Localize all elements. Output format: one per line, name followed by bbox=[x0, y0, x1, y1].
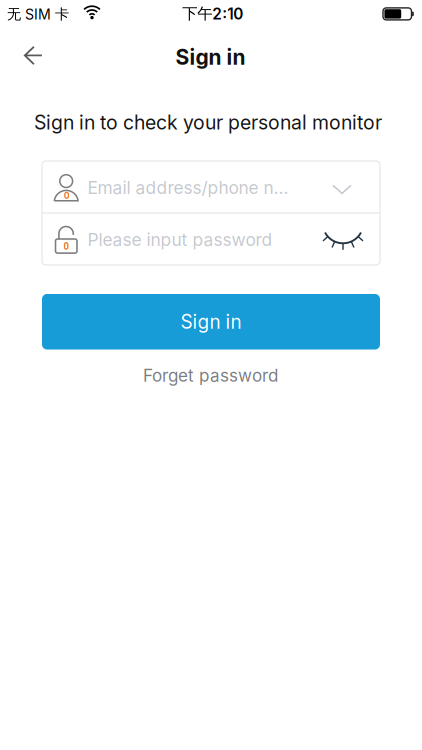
staticText: 下午2:10 bbox=[182, 4, 243, 23]
button[interactable]: Please input password bbox=[42, 213, 380, 265]
staticText: Sign in bbox=[180, 310, 241, 333]
staticText: Sign in bbox=[175, 44, 245, 70]
button[interactable]: Forget password bbox=[143, 365, 278, 386]
button[interactable]: Back bbox=[11, 33, 55, 77]
button[interactable]: Show password bbox=[320, 225, 364, 253]
staticText: Email address/phone n… bbox=[87, 177, 288, 198]
staticText: 无 SIM 卡 bbox=[7, 5, 69, 23]
staticText: Forget password bbox=[143, 365, 278, 386]
staticText: Please input password bbox=[87, 229, 272, 250]
button[interactable]: Sign in bbox=[42, 294, 380, 349]
button[interactable]: Email address/phone n… bbox=[42, 161, 380, 213]
staticText: Sign in to check your personal monitor bbox=[34, 111, 382, 134]
